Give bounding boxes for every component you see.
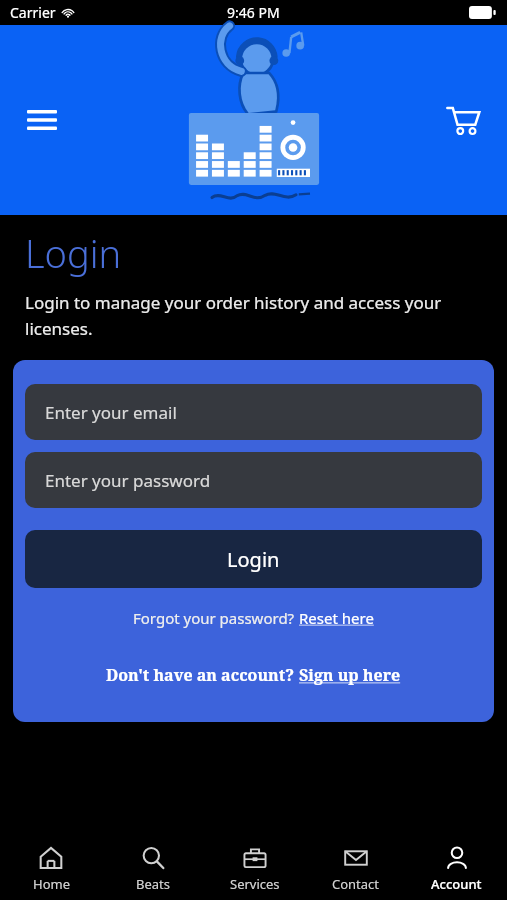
button[interactable]: Enter your password [25, 452, 482, 508]
button[interactable]: Don't have an account? [25, 664, 482, 686]
staticText: Enter your email [45, 401, 177, 424]
button[interactable]: Login [25, 530, 482, 588]
button[interactable]: Cart [439, 96, 487, 144]
staticText: Services [230, 875, 280, 893]
staticText: Beats [136, 875, 170, 893]
button[interactable]: Menu [18, 96, 66, 144]
staticText: Login to manage your order history and a… [25, 291, 472, 340]
button[interactable]: Home [0, 838, 102, 900]
staticText: 9:46 PM [227, 3, 280, 22]
staticText: Sign up here [299, 664, 401, 686]
staticText: Carrier [10, 3, 56, 22]
staticText: Enter your password [45, 469, 211, 492]
staticText: Forgot your password? [133, 608, 299, 628]
staticText: Account [431, 875, 482, 893]
staticText: Reset here [299, 608, 374, 628]
button[interactable]: Contact [305, 838, 406, 900]
button[interactable]: Services [204, 838, 305, 900]
button[interactable]: Enter your email [25, 384, 482, 440]
button[interactable]: Account [406, 838, 507, 900]
button[interactable]: Forgot your password? [25, 608, 482, 628]
staticText: Login [25, 227, 122, 279]
staticText: Don't have an account? [106, 664, 299, 686]
staticText: Contact [332, 875, 380, 893]
button[interactable]: Beats [102, 838, 204, 900]
staticText: Home [33, 875, 70, 893]
staticText: Login [227, 546, 280, 573]
